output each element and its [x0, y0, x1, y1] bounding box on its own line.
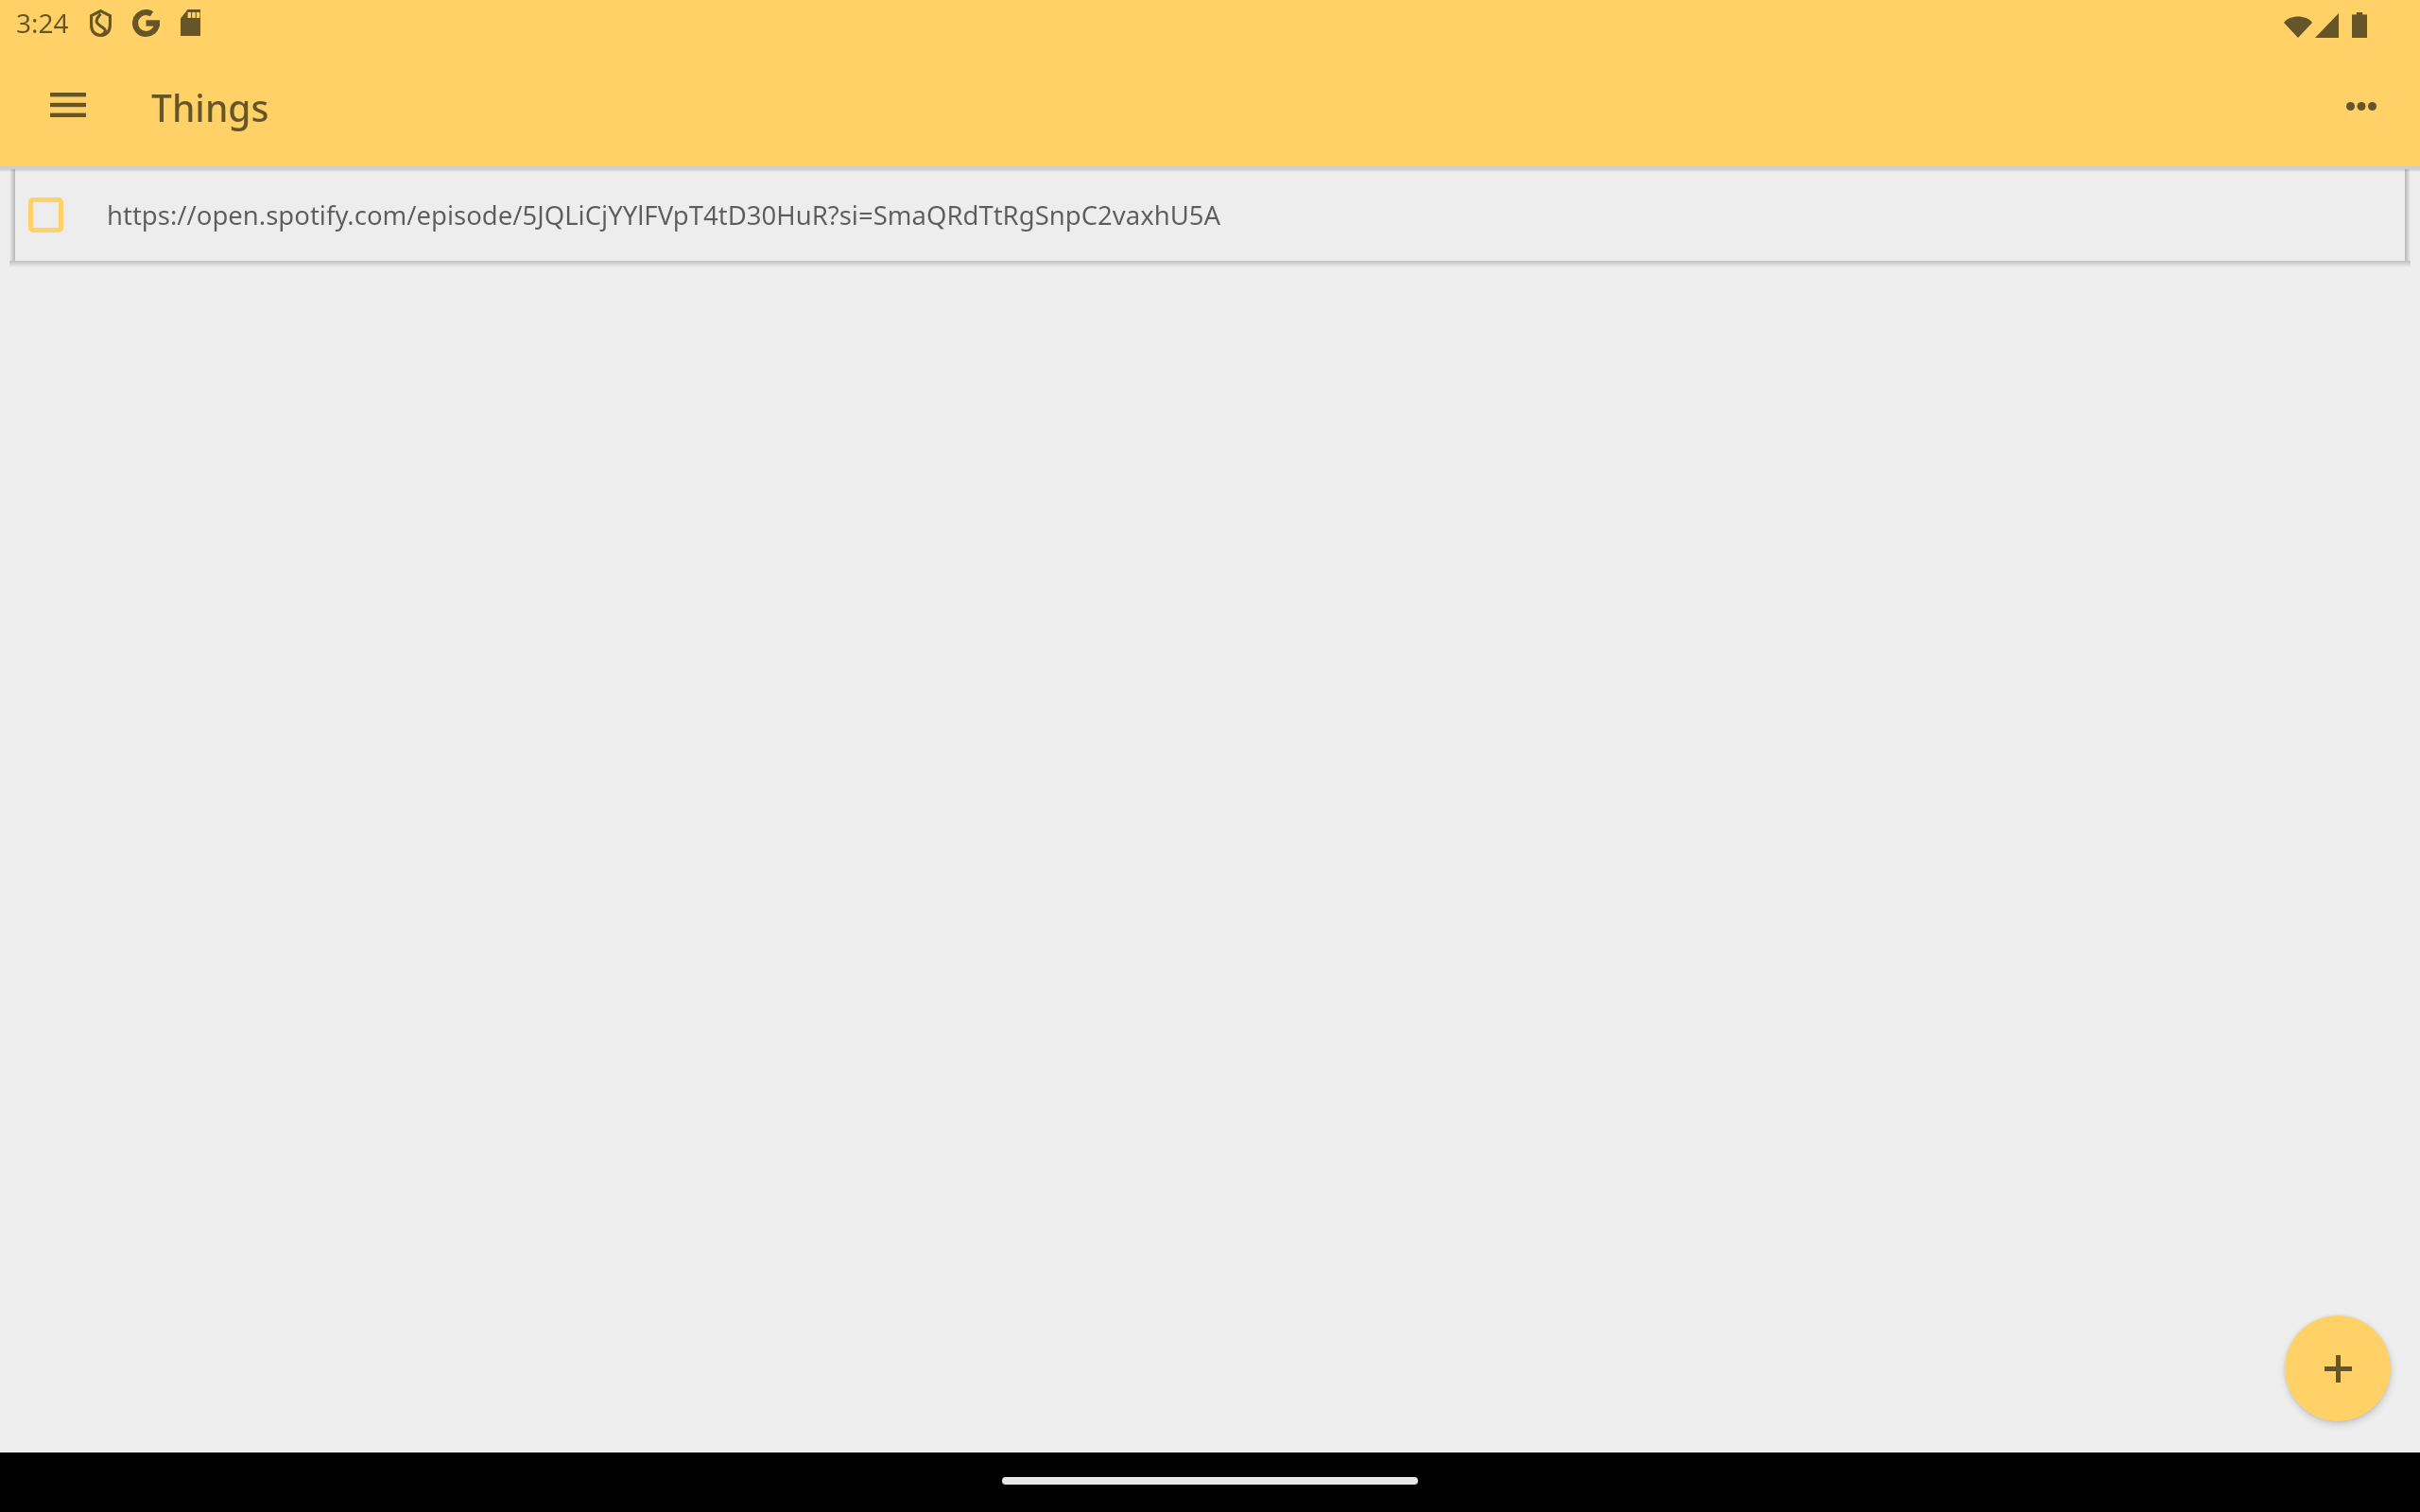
button[interactable]: Add a new thing — [2285, 1315, 2391, 1421]
staticText: https://open.spotify.com/episode/5JQLiCj… — [107, 198, 1221, 232]
button[interactable]: Open navigation drawer — [45, 82, 91, 128]
button[interactable]: Home — [1002, 1477, 1418, 1485]
staticText: Things — [151, 82, 269, 132]
button[interactable]: Mark item as done — [28, 198, 63, 232]
button[interactable]: More options — [2335, 81, 2388, 134]
staticText: 3:24 — [16, 5, 69, 41]
button[interactable]: Mark item as done — [15, 169, 2405, 261]
